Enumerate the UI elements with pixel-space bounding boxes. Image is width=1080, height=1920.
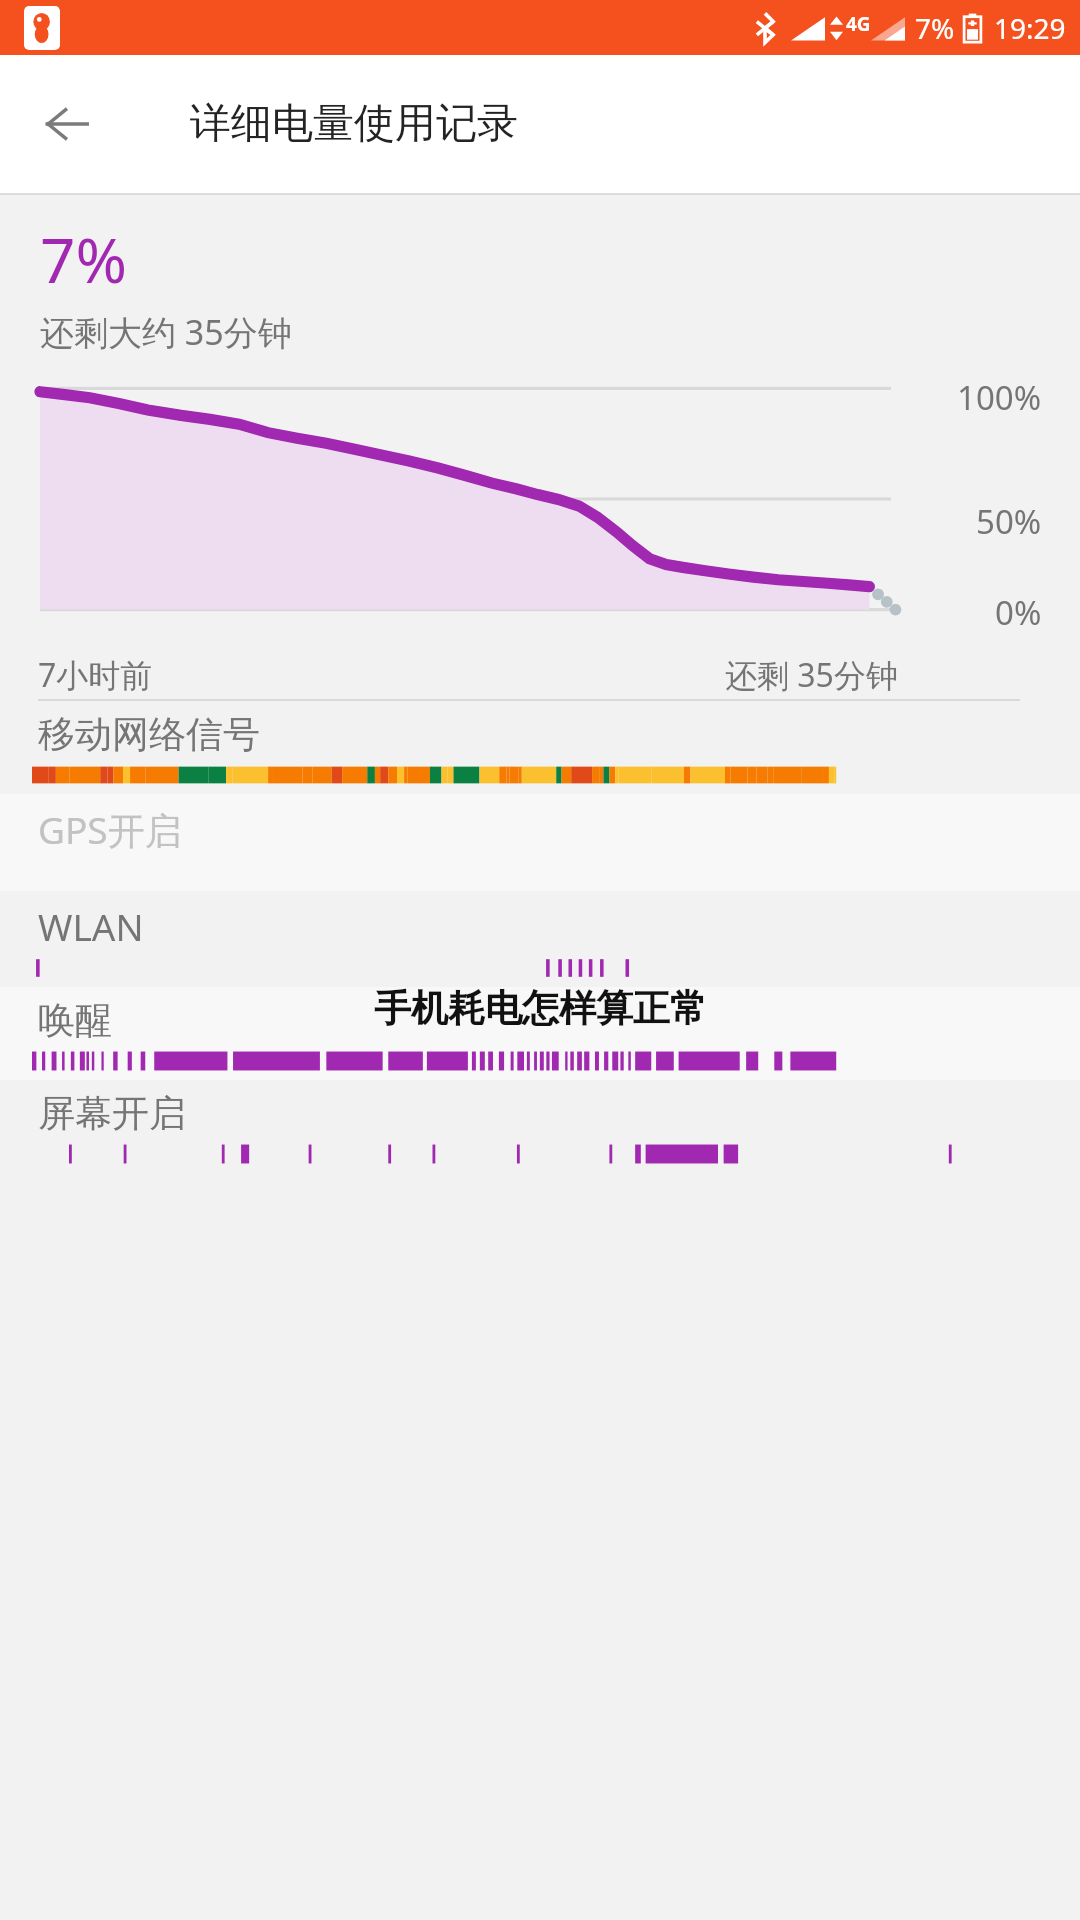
button[interactable]: WLAN [0, 891, 1080, 987]
staticText: 19:29 [994, 9, 1066, 47]
staticText: 移动网络信号 [38, 711, 260, 758]
staticText: 7% [40, 217, 127, 301]
staticText: 100% [957, 375, 1042, 420]
staticText: GPS开启 [38, 804, 182, 855]
staticText: 详细电量使用记录 [190, 98, 518, 150]
staticText: 手机耗电怎样算正常 [374, 985, 707, 1032]
staticText: 还剩 35分钟 [725, 653, 898, 697]
staticText: 还剩大约 35分钟 [40, 309, 292, 355]
button[interactable]: 返回 [36, 93, 98, 155]
staticText: 7小时前 [38, 653, 153, 697]
staticText: 50% [976, 499, 1042, 544]
staticText: 7% [915, 9, 955, 47]
staticText: 4G [846, 11, 871, 37]
button[interactable]: 屏幕开启 [0, 1080, 1080, 1173]
button[interactable]: 唤醒 [0, 987, 1080, 1080]
staticText: 屏幕开启 [38, 1090, 186, 1137]
staticText: WLAN [38, 901, 144, 951]
staticText: 唤醒 [38, 997, 112, 1044]
staticText: 0% [995, 590, 1042, 635]
button[interactable]: 移动网络信号 [0, 701, 1080, 794]
button[interactable]: GPS开启 [0, 794, 1080, 891]
